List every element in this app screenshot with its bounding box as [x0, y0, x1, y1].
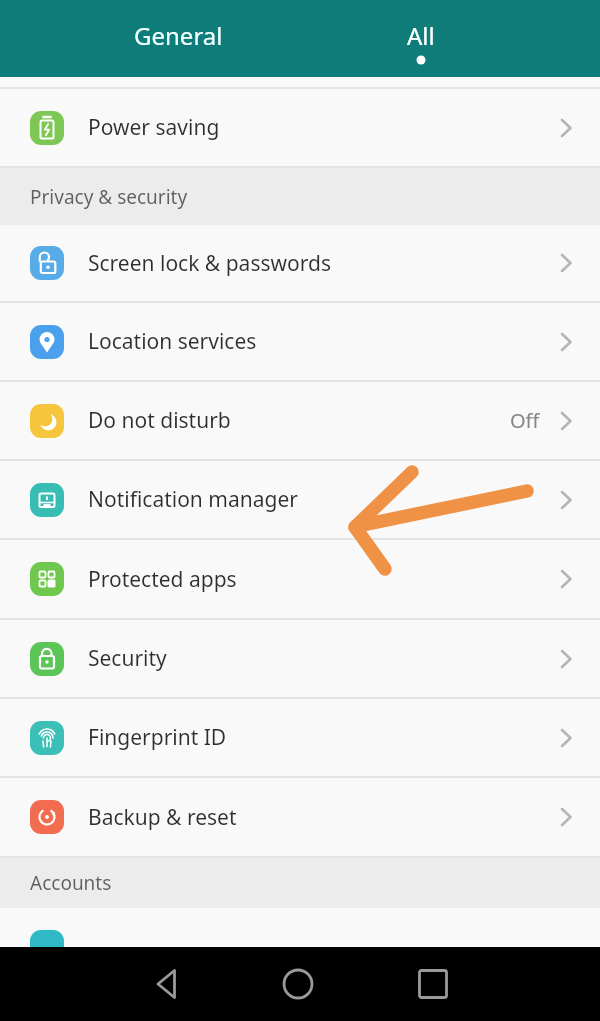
- button[interactable]: All: [321, 0, 521, 74]
- staticText: Fingerprint ID: [88, 723, 227, 752]
- staticText: Privacy & security: [30, 184, 188, 210]
- staticText: Security: [88, 644, 167, 673]
- button[interactable]: General: [78, 0, 278, 74]
- staticText: Off: [510, 407, 540, 434]
- button[interactable]: Do not disturb: [0, 382, 600, 461]
- staticText: Do not disturb: [88, 406, 231, 435]
- button[interactable]: Fingerprint ID: [0, 699, 600, 778]
- button[interactable]: Screen lock & passwords: [0, 225, 600, 303]
- staticText: Power saving: [88, 113, 220, 142]
- button[interactable]: [403, 947, 463, 1021]
- staticText: All: [407, 19, 435, 52]
- staticText: Location services: [88, 327, 257, 356]
- button[interactable]: [268, 947, 328, 1021]
- button[interactable]: Location services: [0, 303, 600, 382]
- button[interactable]: Backup & reset: [0, 778, 600, 858]
- button[interactable]: [138, 947, 198, 1021]
- staticText: Accounts: [30, 870, 112, 896]
- staticText: Backup & reset: [88, 803, 237, 832]
- staticText: Notification manager: [88, 485, 298, 514]
- staticText: General: [134, 19, 223, 52]
- button[interactable]: [0, 908, 600, 947]
- button[interactable]: Security: [0, 620, 600, 699]
- staticText: Protected apps: [88, 565, 237, 594]
- button[interactable]: Power saving: [0, 89, 600, 168]
- button[interactable]: Notification manager: [0, 461, 600, 540]
- button[interactable]: Protected apps: [0, 540, 600, 620]
- staticText: Screen lock & passwords: [88, 249, 331, 278]
